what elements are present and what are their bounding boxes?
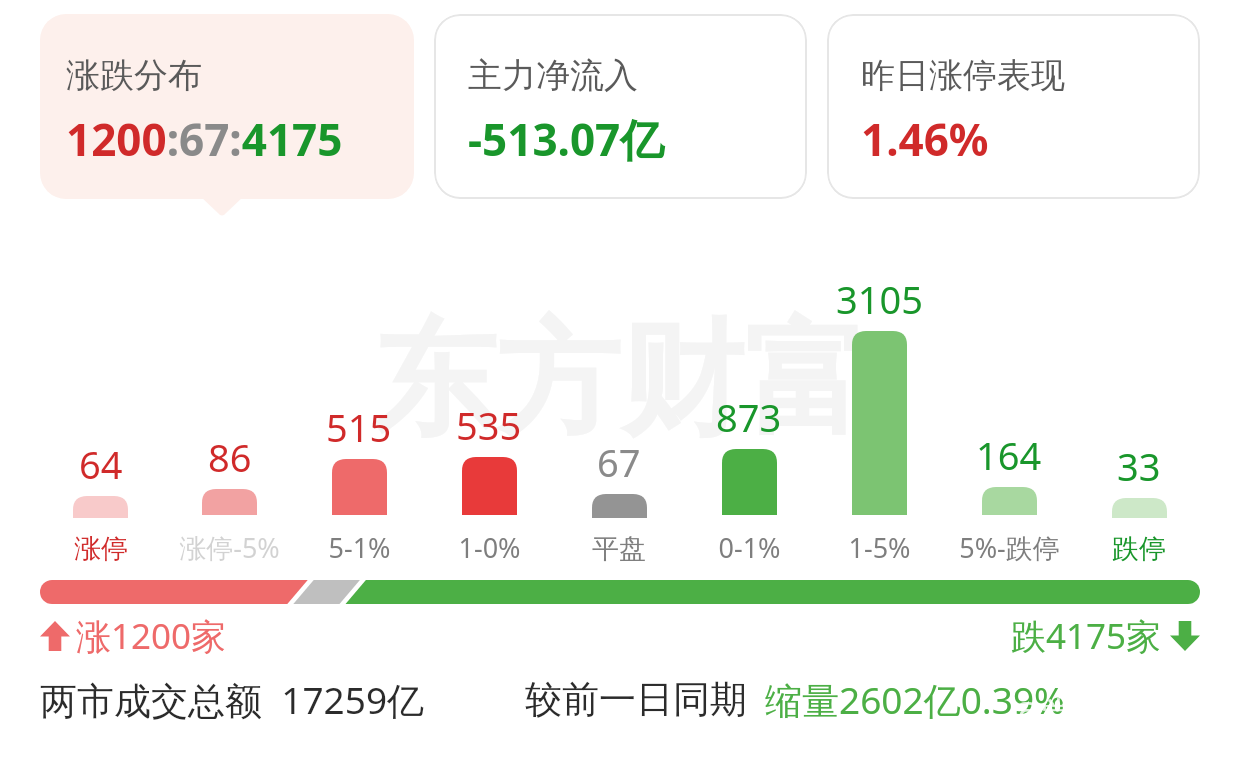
staticText: 67 <box>597 436 641 488</box>
staticText: 1.46% <box>861 109 989 169</box>
staticText: 33 <box>1117 440 1161 492</box>
button[interactable]: 涨1200家 <box>40 612 227 660</box>
staticText: 涨停-5% <box>179 529 280 566</box>
staticText: @常规人.NR <box>1010 690 1210 739</box>
button[interactable]: 涨跌家数比例 <box>40 580 1200 604</box>
staticText: 涨停 <box>74 532 128 566</box>
staticText: 873 <box>716 391 782 443</box>
staticText: 1200:67:4175 <box>66 109 343 169</box>
staticText: 涨跌分布 <box>66 54 202 97</box>
staticText: 86 <box>208 431 252 483</box>
staticText: 缩量2602亿0.39% <box>765 674 1065 725</box>
staticText: 跌停 <box>1112 532 1166 566</box>
staticText: 1-0% <box>458 529 521 566</box>
staticText: 515 <box>326 401 392 453</box>
staticText: 跌4175家 <box>1011 612 1162 660</box>
staticText: 东方财富 <box>372 303 868 459</box>
button[interactable]: 跌4175家 <box>1011 612 1200 660</box>
staticText: 昨日涨停表现 <box>861 54 1065 97</box>
staticText: 535 <box>456 399 522 451</box>
staticText: 5%-跌停 <box>959 529 1060 566</box>
staticText: 主力净流入 <box>468 54 638 97</box>
staticText: 1-5% <box>848 529 911 566</box>
staticText: -513.07亿 <box>468 109 665 169</box>
button[interactable]: 昨日涨停表现 <box>827 14 1200 199</box>
button[interactable]: 主力净流入 <box>434 14 807 199</box>
staticText: 3105 <box>836 273 923 325</box>
staticText: 0-1% <box>718 529 781 566</box>
staticText: 5-1% <box>328 529 391 566</box>
staticText: 两市成交总额 17259亿 <box>40 674 425 725</box>
staticText: 64 <box>79 438 123 490</box>
staticText: 平盘 <box>592 532 646 566</box>
staticText: 164 <box>976 429 1042 481</box>
staticText: 较前一日同期 <box>525 676 747 723</box>
button[interactable]: 涨跌分布 <box>40 14 414 214</box>
staticText: 涨1200家 <box>76 612 227 660</box>
